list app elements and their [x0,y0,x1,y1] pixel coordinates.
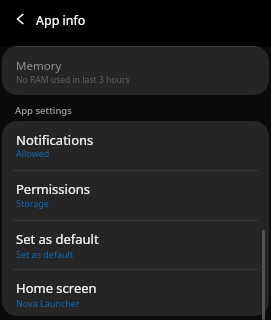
staticText: Home screen [16,279,97,297]
button[interactable] [2,269,269,316]
staticText: Permissions [16,180,91,198]
staticText: Allowed [16,147,50,159]
staticText: Nova Launcher [16,297,80,309]
button[interactable]: Back [5,4,34,33]
staticText: No RAM used in last 3 hours [16,74,130,86]
button[interactable]: Memory [2,46,269,95]
button[interactable] [2,121,269,170]
staticText: App settings [15,104,72,117]
staticText: Memory [16,58,62,74]
button[interactable] [2,220,269,269]
staticText: Set as default [16,230,99,248]
staticText: App info [36,12,86,29]
staticText: Notifications [16,131,94,149]
staticText: Set as default [16,248,74,260]
button[interactable] [2,170,269,220]
staticText: Storage [16,197,49,209]
